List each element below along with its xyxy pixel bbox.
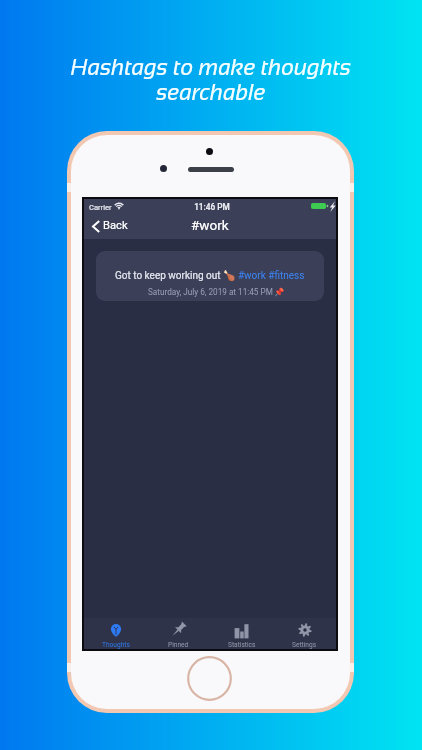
staticText: Thoughts bbox=[102, 641, 130, 649]
staticText: Carrier bbox=[89, 203, 112, 212]
staticText: Back bbox=[103, 219, 128, 232]
staticText: Got to keep working out 🍗 #work #fitness bbox=[115, 270, 305, 282]
staticText: #work bbox=[191, 217, 229, 233]
staticText: Saturday, July 6, 2019 at 11:45 PM bbox=[148, 287, 273, 297]
button[interactable]: Settings bbox=[273, 618, 336, 649]
staticText: Settings bbox=[292, 641, 317, 649]
button[interactable]: Back bbox=[84, 216, 134, 239]
staticText: 11:46 PM bbox=[179, 202, 245, 212]
staticText: Pinned bbox=[168, 641, 189, 649]
button[interactable]: Pinned bbox=[147, 618, 210, 649]
staticText: 📌 bbox=[274, 287, 285, 297]
button[interactable]: Thoughts bbox=[84, 618, 147, 649]
button[interactable]: Statistics bbox=[210, 618, 273, 649]
staticText: Hashtags to make thoughts searchable bbox=[0, 55, 422, 105]
staticText: Statistics bbox=[228, 641, 256, 649]
button[interactable]: Got to keep working out 🍗 #work #fitness bbox=[96, 251, 324, 301]
